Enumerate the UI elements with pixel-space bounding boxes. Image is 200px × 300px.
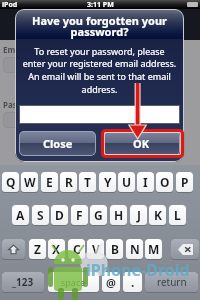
button[interactable]: Close — [19, 131, 96, 156]
staticText: _123 — [12, 275, 34, 289]
button[interactable]: O — [156, 172, 173, 192]
button[interactable]: S — [32, 205, 49, 225]
button[interactable]: Y — [99, 172, 116, 192]
button[interactable]: Delete — [171, 239, 199, 259]
button[interactable]: L — [169, 205, 186, 225]
staticText: Z — [34, 241, 41, 257]
staticText: Password — [3, 99, 42, 110]
button[interactable]: B — [106, 239, 123, 259]
staticText: 3:11 PM — [87, 0, 114, 9]
button[interactable]: P — [176, 172, 193, 192]
staticText: To reset your password, please enter you… — [17, 45, 182, 96]
staticText: A — [16, 207, 25, 223]
staticText: S — [37, 207, 44, 223]
button[interactable]: K — [149, 205, 166, 225]
button[interactable]: _123 — [2, 272, 44, 292]
button[interactable]: D — [51, 205, 68, 225]
button[interactable]: space — [48, 272, 99, 292]
staticText: Q — [6, 174, 16, 190]
staticText: R — [65, 174, 73, 190]
staticText: @ — [106, 275, 116, 290]
button[interactable]: H — [110, 205, 127, 225]
button[interactable]: F — [71, 205, 88, 225]
button[interactable] — [20, 106, 179, 123]
staticText: OK — [133, 136, 150, 151]
button[interactable]: C — [68, 239, 85, 259]
button[interactable]: R — [60, 172, 77, 192]
button[interactable]: Z — [29, 239, 46, 259]
button[interactable]: J — [130, 205, 147, 225]
staticText: U — [122, 174, 132, 190]
staticText: T — [84, 174, 91, 190]
staticText: F — [76, 207, 83, 223]
staticText: iPhone-Droid — [86, 259, 190, 281]
button[interactable]: V — [87, 239, 104, 259]
button[interactable]: I — [137, 172, 154, 192]
button[interactable]: U — [118, 172, 135, 192]
button[interactable]: X — [48, 239, 65, 259]
staticText: Close — [43, 136, 73, 151]
button[interactable]: @ — [102, 272, 120, 292]
button[interactable]: . — [123, 272, 142, 292]
button[interactable]: return — [145, 272, 198, 292]
staticText: H — [114, 207, 124, 223]
staticText: Y — [104, 174, 112, 190]
button[interactable]: A — [12, 205, 29, 225]
staticText: G — [94, 207, 103, 223]
staticText: M — [148, 241, 160, 257]
button[interactable]: M — [145, 239, 162, 259]
button[interactable]: E — [41, 172, 58, 192]
button[interactable]: OK — [103, 131, 180, 156]
button[interactable]: W — [21, 172, 38, 192]
staticText: K — [154, 207, 162, 223]
staticText: Have you forgotten your password? — [17, 13, 182, 40]
staticText: return — [157, 275, 187, 289]
button[interactable]: Shift — [2, 239, 25, 259]
button[interactable]: G — [90, 205, 107, 225]
staticText: space — [61, 276, 86, 288]
staticText: I — [143, 174, 148, 190]
staticText: C — [73, 241, 81, 257]
staticText: iPod — [2, 0, 18, 9]
staticText: P — [181, 174, 189, 190]
button[interactable]: T — [79, 172, 96, 192]
staticText: O — [160, 174, 170, 190]
staticText: X — [52, 241, 61, 257]
staticText: V — [92, 241, 100, 257]
staticText: D — [55, 207, 64, 223]
staticText: L — [174, 207, 181, 223]
staticText: J — [137, 207, 141, 223]
button[interactable]: Q — [2, 172, 19, 192]
staticText: B — [111, 241, 119, 257]
staticText: W — [24, 174, 36, 190]
staticText: . — [131, 274, 135, 290]
staticText: Email — [3, 44, 25, 55]
button[interactable]: N — [126, 239, 143, 259]
staticText: E — [46, 174, 53, 190]
staticText: N — [130, 241, 140, 257]
